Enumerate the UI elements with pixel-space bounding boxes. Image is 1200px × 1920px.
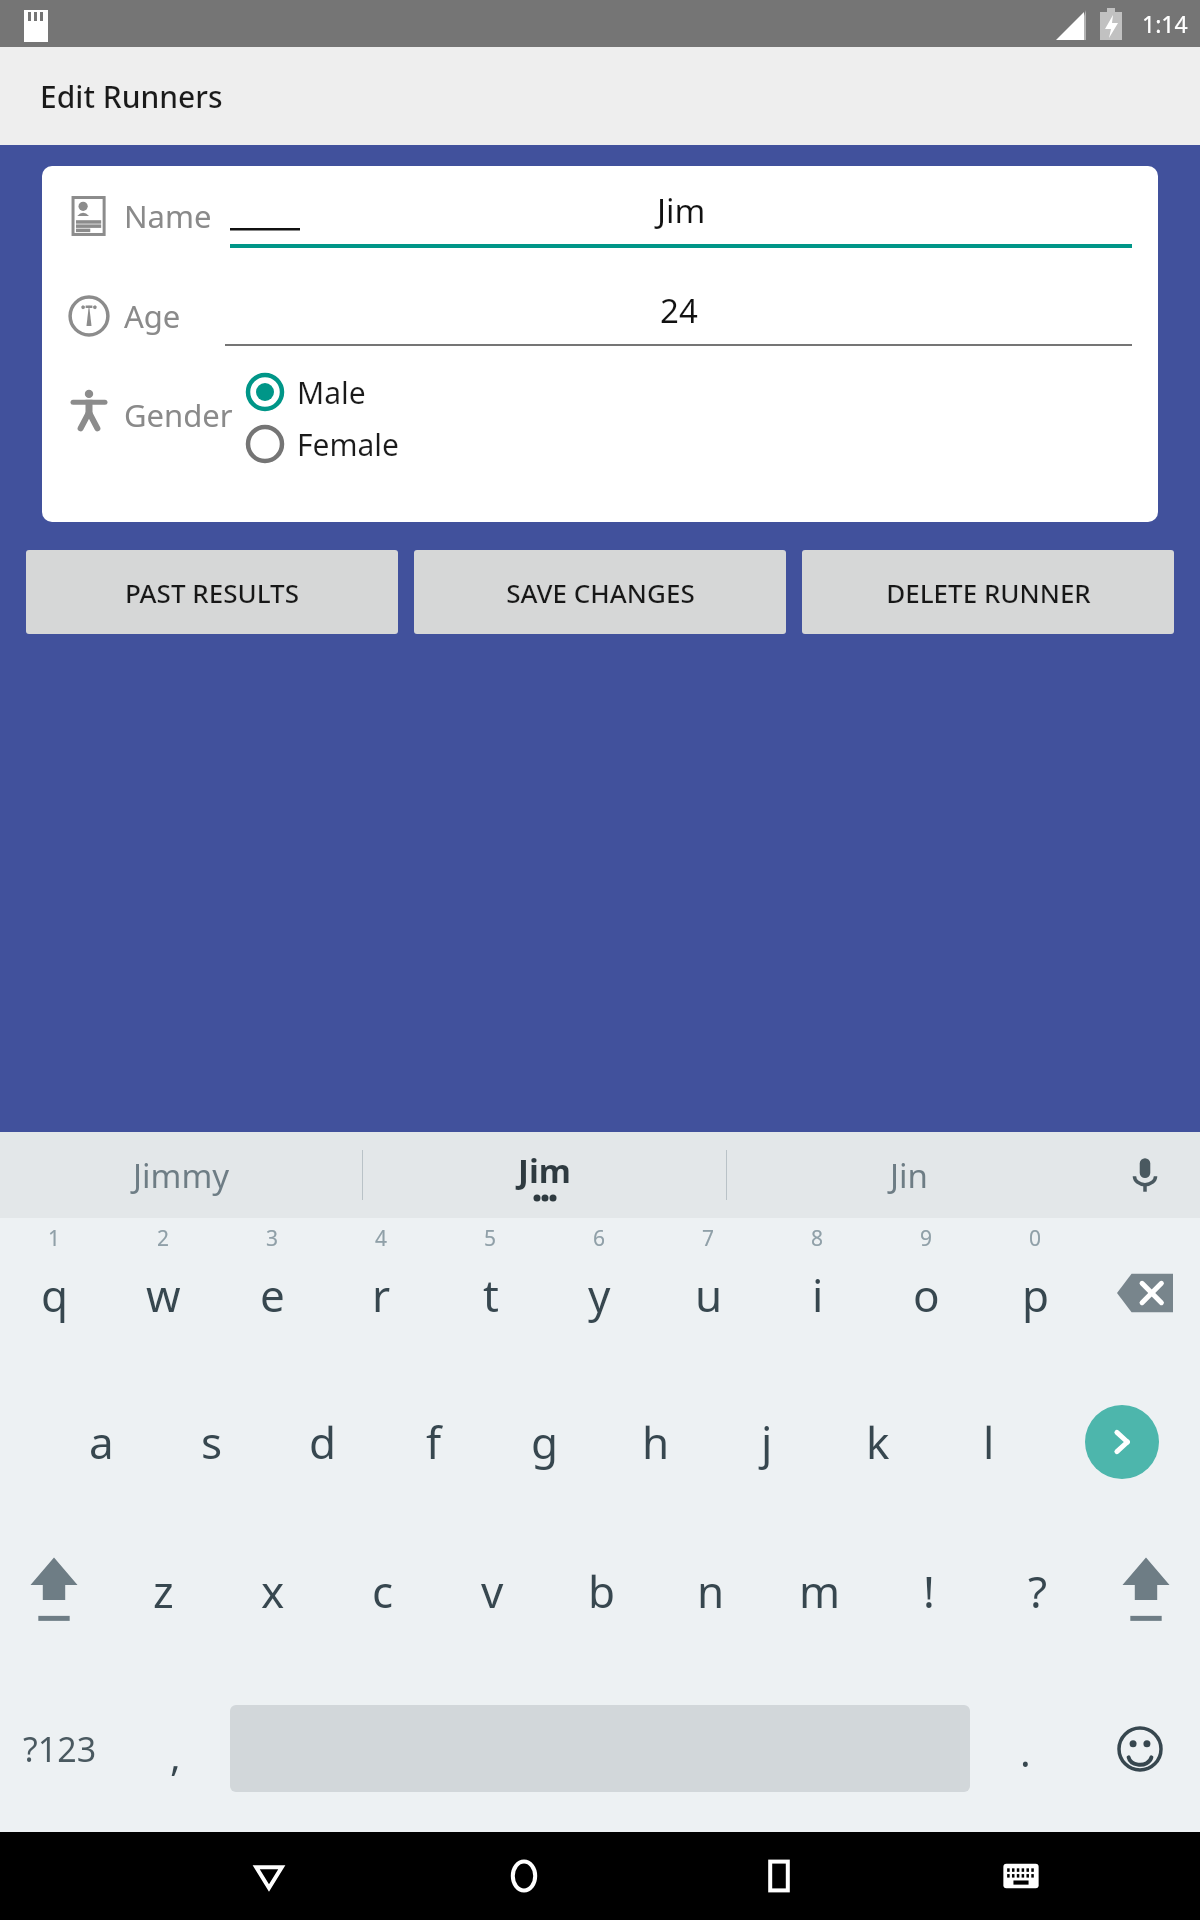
staticText: w — [146, 1265, 181, 1325]
button[interactable]: Back — [141, 1832, 396, 1920]
button[interactable]: k — [822, 1367, 933, 1516]
button[interactable]: Keyboard — [906, 1832, 1136, 1920]
staticText: Female — [297, 424, 400, 465]
button[interactable]: . — [970, 1665, 1080, 1832]
button[interactable]: j — [711, 1367, 822, 1516]
staticText: d — [309, 1412, 337, 1472]
button[interactable]: f — [378, 1367, 489, 1516]
staticText: m — [799, 1561, 841, 1621]
button[interactable]: 0 — [981, 1218, 1090, 1367]
staticText: a — [89, 1412, 114, 1472]
button[interactable]: Jin — [727, 1132, 1090, 1218]
button[interactable]: 5 — [436, 1218, 545, 1367]
staticText: p — [1022, 1265, 1050, 1325]
staticText: , — [170, 1728, 181, 1782]
button[interactable]: b — [547, 1516, 656, 1665]
staticText: s — [201, 1412, 223, 1472]
staticText: o — [913, 1265, 940, 1325]
button[interactable]: s — [156, 1367, 267, 1516]
button[interactable]: Backspace — [1090, 1218, 1200, 1367]
staticText: Jin — [890, 1153, 928, 1198]
button[interactable]: Female — [245, 418, 400, 470]
button[interactable]: 8 — [763, 1218, 872, 1367]
button[interactable]: c — [328, 1516, 438, 1665]
staticText: Jimmy — [133, 1153, 230, 1198]
button[interactable]: Male — [245, 366, 366, 418]
staticText: 24 — [660, 288, 698, 333]
button[interactable]: l — [933, 1367, 1044, 1516]
staticText: . — [1020, 1724, 1031, 1778]
button[interactable]: n — [656, 1516, 765, 1665]
button[interactable]: Emoji — [1080, 1665, 1200, 1832]
staticText: Gender — [124, 394, 233, 436]
staticText: b — [588, 1561, 616, 1621]
staticText: 1 — [48, 1224, 61, 1253]
staticText: Age — [124, 295, 181, 337]
button[interactable]: Enter — [1044, 1367, 1200, 1516]
button[interactable]: 3 — [218, 1218, 327, 1367]
staticText: ?123 — [23, 1726, 97, 1772]
staticText: 0 — [1029, 1224, 1042, 1253]
button[interactable]: v — [438, 1516, 547, 1665]
staticText: 9 — [920, 1224, 933, 1253]
button[interactable]: Shift — [0, 1516, 108, 1665]
staticText: Jim — [518, 1148, 571, 1193]
staticText: 1:14 — [1142, 8, 1188, 39]
staticText: 6 — [593, 1224, 606, 1253]
staticText: u — [695, 1265, 723, 1325]
staticText: 4 — [375, 1224, 388, 1253]
button[interactable]: Shift — [1092, 1516, 1200, 1665]
button[interactable]: 7 — [654, 1218, 763, 1367]
staticText: t — [483, 1265, 499, 1325]
staticText: h — [642, 1412, 670, 1472]
staticText: 2 — [157, 1224, 170, 1253]
button[interactable]: Home — [396, 1832, 651, 1920]
staticText: j — [761, 1412, 773, 1472]
button[interactable]: m — [765, 1516, 874, 1665]
staticText: n — [697, 1561, 725, 1621]
staticText: i — [812, 1265, 824, 1325]
staticText: SAVE CHANGES — [506, 575, 695, 610]
button[interactable]: x — [218, 1516, 328, 1665]
staticText: z — [153, 1561, 174, 1621]
button[interactable]: Jimmy — [0, 1132, 362, 1218]
staticText: r — [372, 1265, 391, 1325]
button[interactable]: d — [267, 1367, 378, 1516]
button[interactable]: PAST RESULTS — [26, 550, 398, 634]
button[interactable]: , — [120, 1665, 230, 1832]
button[interactable]: 4 — [327, 1218, 436, 1367]
staticText: y — [588, 1265, 611, 1325]
button[interactable]: 2 — [109, 1218, 218, 1367]
button[interactable]: 1 — [0, 1218, 109, 1367]
staticText: e — [260, 1265, 285, 1325]
staticText: g — [531, 1412, 559, 1472]
button[interactable]: g — [489, 1367, 600, 1516]
staticText: 3 — [266, 1224, 279, 1253]
button[interactable]: h — [600, 1367, 711, 1516]
button[interactable]: Jim — [363, 1132, 726, 1218]
staticText: x — [261, 1561, 285, 1621]
staticText: ! — [923, 1561, 935, 1621]
button[interactable]: ?123 — [0, 1665, 120, 1832]
staticText: 8 — [811, 1224, 824, 1253]
button[interactable]: a — [46, 1367, 156, 1516]
button[interactable]: Recents — [651, 1832, 906, 1920]
button[interactable]: 9 — [872, 1218, 981, 1367]
staticText: k — [866, 1412, 890, 1472]
staticText: f — [426, 1412, 442, 1472]
button[interactable]: 6 — [545, 1218, 654, 1367]
staticText: l — [983, 1412, 995, 1472]
button[interactable]: SAVE CHANGES — [414, 550, 786, 634]
staticText: ? — [1028, 1561, 1048, 1621]
staticText: v — [481, 1561, 504, 1621]
staticText: q — [41, 1265, 69, 1325]
button[interactable]: z — [108, 1516, 218, 1665]
button[interactable]: Voice input — [1090, 1132, 1200, 1218]
button[interactable]: ? — [983, 1516, 1092, 1665]
button[interactable]: ! — [874, 1516, 983, 1665]
staticText: 7 — [702, 1224, 715, 1253]
staticText: Male — [297, 372, 366, 413]
button[interactable]: DELETE RUNNER — [802, 550, 1174, 634]
staticText: PAST RESULTS — [125, 575, 299, 610]
